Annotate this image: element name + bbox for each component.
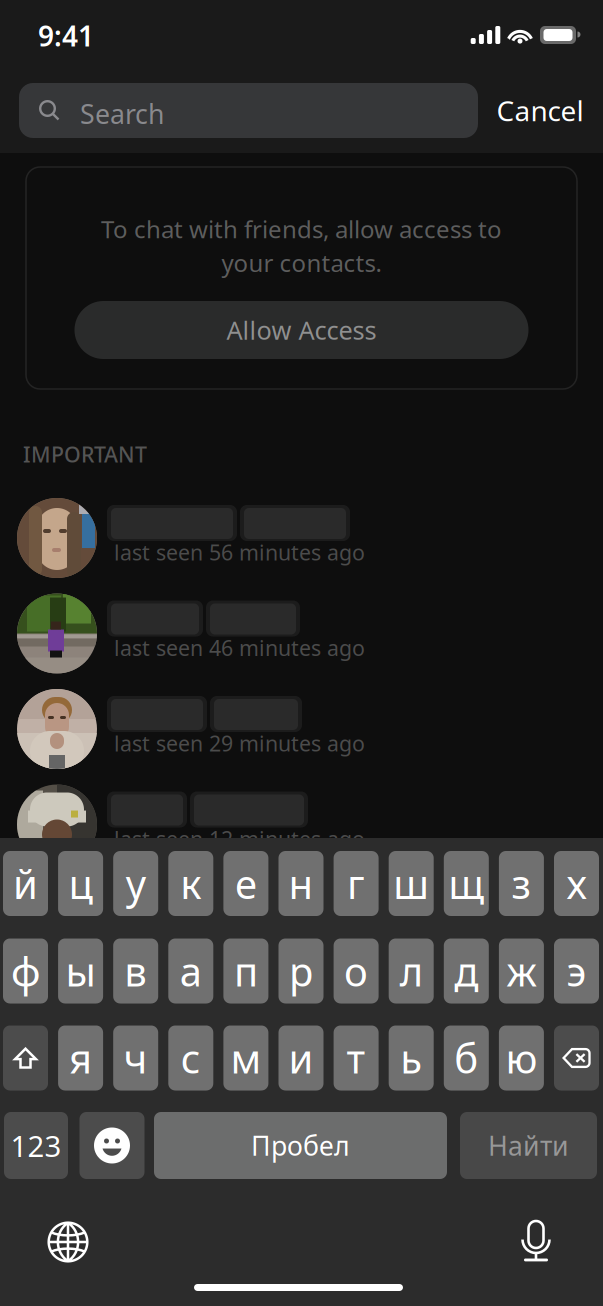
button[interactable]: б xyxy=(444,1025,489,1090)
button[interactable]: last seen 46 minutes ago xyxy=(0,585,603,680)
staticText: о xyxy=(344,944,368,997)
button[interactable]: ч xyxy=(113,1025,158,1090)
button[interactable]: last seen 29 minutes ago xyxy=(0,681,603,776)
staticText: б xyxy=(454,1031,478,1084)
button[interactable]: г xyxy=(334,851,379,916)
staticText: в xyxy=(124,944,147,997)
staticText: ь xyxy=(400,1031,422,1084)
button[interactable]: р xyxy=(278,938,323,1003)
staticText: п xyxy=(234,944,258,997)
button[interactable]: last seen 56 minutes ago xyxy=(0,490,603,585)
button[interactable]: м xyxy=(223,1025,268,1090)
button[interactable]: ш xyxy=(389,851,434,916)
staticText: 9:41 xyxy=(38,17,94,54)
staticText: To chat with friends, allow access to xyxy=(101,213,502,245)
button[interactable]: Shift xyxy=(3,1025,48,1090)
staticText: 123 xyxy=(10,1126,61,1165)
button[interactable]: ь xyxy=(389,1025,434,1090)
staticText: ч xyxy=(124,1031,148,1084)
button[interactable]: и xyxy=(278,1025,323,1090)
button[interactable]: й xyxy=(3,851,48,916)
staticText: л xyxy=(400,944,423,997)
button[interactable]: е xyxy=(223,851,268,916)
staticText: г xyxy=(347,857,365,910)
button[interactable]: Cancel xyxy=(488,83,592,138)
staticText: й xyxy=(13,857,38,910)
button[interactable]: я xyxy=(58,1025,103,1090)
staticText: д xyxy=(454,944,478,997)
button[interactable]: т xyxy=(334,1025,379,1090)
staticText: у xyxy=(126,857,146,910)
button[interactable]: Allow Access xyxy=(74,301,528,359)
staticText: Allow Access xyxy=(226,313,376,347)
staticText: м xyxy=(230,1031,261,1084)
button[interactable]: ы xyxy=(58,938,103,1003)
staticText: э xyxy=(566,944,586,997)
button[interactable]: у xyxy=(113,851,158,916)
staticText: щ xyxy=(448,857,484,910)
staticText: IMPORTANT xyxy=(23,440,147,468)
button[interactable]: о xyxy=(334,938,379,1003)
staticText: з xyxy=(511,857,531,910)
button[interactable]: з xyxy=(499,851,544,916)
button[interactable]: Dictation xyxy=(500,1209,572,1273)
button[interactable]: п xyxy=(223,938,268,1003)
button[interactable]: ц xyxy=(58,851,103,916)
staticText: е xyxy=(235,857,257,910)
button[interactable]: ж xyxy=(499,938,544,1003)
button[interactable]: Backspace xyxy=(554,1025,599,1090)
staticText: я xyxy=(69,1031,92,1084)
button[interactable]: ю xyxy=(499,1025,544,1090)
staticText: last seen 12 minutes ago xyxy=(114,824,365,853)
staticText: ц xyxy=(69,857,93,910)
staticText: Пробел xyxy=(251,1128,350,1163)
button[interactable]: ф xyxy=(3,938,48,1003)
button[interactable]: д xyxy=(444,938,489,1003)
staticText: ж xyxy=(506,944,536,997)
button[interactable]: щ xyxy=(444,851,489,916)
button[interactable]: к xyxy=(168,851,213,916)
staticText: т xyxy=(347,1031,366,1084)
staticText: Найти xyxy=(488,1128,569,1163)
staticText: х xyxy=(566,857,586,910)
staticText: last seen 46 minutes ago xyxy=(114,633,365,662)
button[interactable]: с xyxy=(168,1025,213,1090)
button[interactable]: Next keyboard xyxy=(32,1210,104,1274)
button[interactable]: а xyxy=(168,938,213,1003)
staticText: ш xyxy=(393,857,429,910)
staticText: your contacts. xyxy=(221,247,381,279)
button[interactable]: Найти xyxy=(460,1112,597,1179)
button[interactable]: Emoji xyxy=(79,1112,144,1179)
staticText: р xyxy=(289,944,313,997)
button[interactable]: л xyxy=(389,938,434,1003)
button[interactable]: в xyxy=(113,938,158,1003)
staticText: к xyxy=(180,857,201,910)
staticText: Cancel xyxy=(496,92,583,129)
button[interactable]: last seen 12 minutes ago xyxy=(0,776,603,871)
staticText: ю xyxy=(505,1031,537,1084)
staticText: last seen 29 minutes ago xyxy=(114,729,365,757)
button[interactable]: х xyxy=(554,851,599,916)
button[interactable]: 123 xyxy=(4,1112,68,1179)
staticText: ы xyxy=(66,944,96,997)
staticText: с xyxy=(181,1031,201,1084)
staticText: и xyxy=(288,1031,313,1084)
button[interactable]: н xyxy=(278,851,323,916)
staticText: ф xyxy=(11,944,40,997)
staticText: last seen 56 minutes ago xyxy=(114,538,365,566)
staticText: Search xyxy=(80,96,164,131)
staticText: н xyxy=(288,857,313,910)
staticText: а xyxy=(180,944,202,997)
button[interactable]: Пробел xyxy=(154,1112,447,1179)
button[interactable]: э xyxy=(554,938,599,1003)
